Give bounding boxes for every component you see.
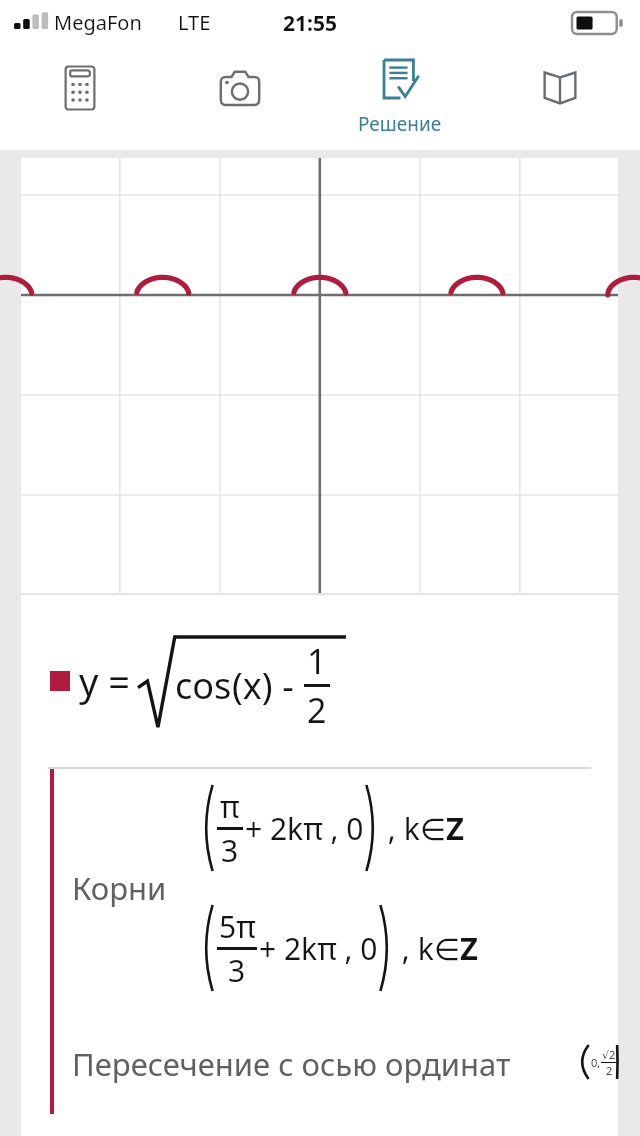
staticText: 3 (221, 830, 239, 871)
staticText: 5π (219, 906, 256, 947)
staticText: 0, (591, 1055, 601, 1070)
staticText: Z (446, 807, 464, 849)
staticText: 2 (307, 687, 327, 733)
staticText: + 2kπ , 0 (259, 928, 378, 969)
staticText: + 2kπ , 0 (245, 808, 364, 849)
staticText: LTE (178, 9, 211, 36)
button[interactable]: Пересечение с осью ординат (21, 1007, 618, 1136)
staticText: cos (175, 661, 232, 710)
staticText: , k∈ (394, 928, 460, 969)
staticText: Решение (358, 111, 442, 137)
staticText: 3 (228, 950, 246, 991)
button[interactable]: Calculator (0, 45, 160, 150)
staticText: y = (79, 655, 130, 707)
staticText: Z (460, 927, 478, 969)
button[interactable]: Book (480, 45, 640, 150)
button[interactable]: Корни (21, 769, 618, 1007)
staticText: , k∈ (380, 808, 446, 849)
staticText: (x) (232, 661, 273, 710)
staticText: - (273, 661, 304, 710)
staticText: 1 (307, 638, 327, 684)
button[interactable]: y = (21, 595, 618, 767)
staticText: √2 (602, 1047, 616, 1062)
button[interactable]: Camera (160, 45, 320, 150)
staticText: Корни (72, 867, 167, 909)
button[interactable]: Решение (320, 45, 480, 150)
staticText: π (220, 786, 240, 827)
staticText: 2 (606, 1063, 613, 1078)
staticText: Пересечение с осью ординат (72, 1043, 511, 1085)
staticText: MegaFon (54, 9, 142, 36)
staticText: 21:55 (283, 9, 337, 38)
